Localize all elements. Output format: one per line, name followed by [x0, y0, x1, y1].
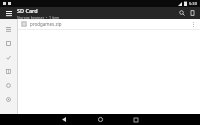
button[interactable]: Open navigation drawer: [0, 7, 17, 19]
staticText: 5:30: [189, 1, 197, 6]
button[interactable]: Rail item 3: [0, 50, 17, 64]
button[interactable]: Recent apps: [125, 114, 147, 125]
staticText: prodgames.zip: [30, 21, 189, 27]
button[interactable]: Back: [53, 114, 75, 125]
button[interactable]: Rail item 5: [0, 78, 17, 92]
button[interactable]: Rail item 6: [0, 92, 17, 106]
button[interactable]: Search: [176, 7, 187, 19]
button[interactable]: Rail item 1: [0, 22, 17, 36]
button[interactable]: Rail item 2: [0, 36, 17, 50]
button[interactable]: Home: [89, 114, 111, 125]
button[interactable]: File options: [189, 19, 197, 29]
button[interactable]: Rail item 4: [0, 64, 17, 78]
button[interactable]: prodgames.zip: [18, 19, 200, 29]
staticText: Storage browser • 1 item: [17, 15, 60, 19]
staticText: SD Card: [17, 7, 38, 14]
button[interactable]: More options: [187, 7, 198, 19]
